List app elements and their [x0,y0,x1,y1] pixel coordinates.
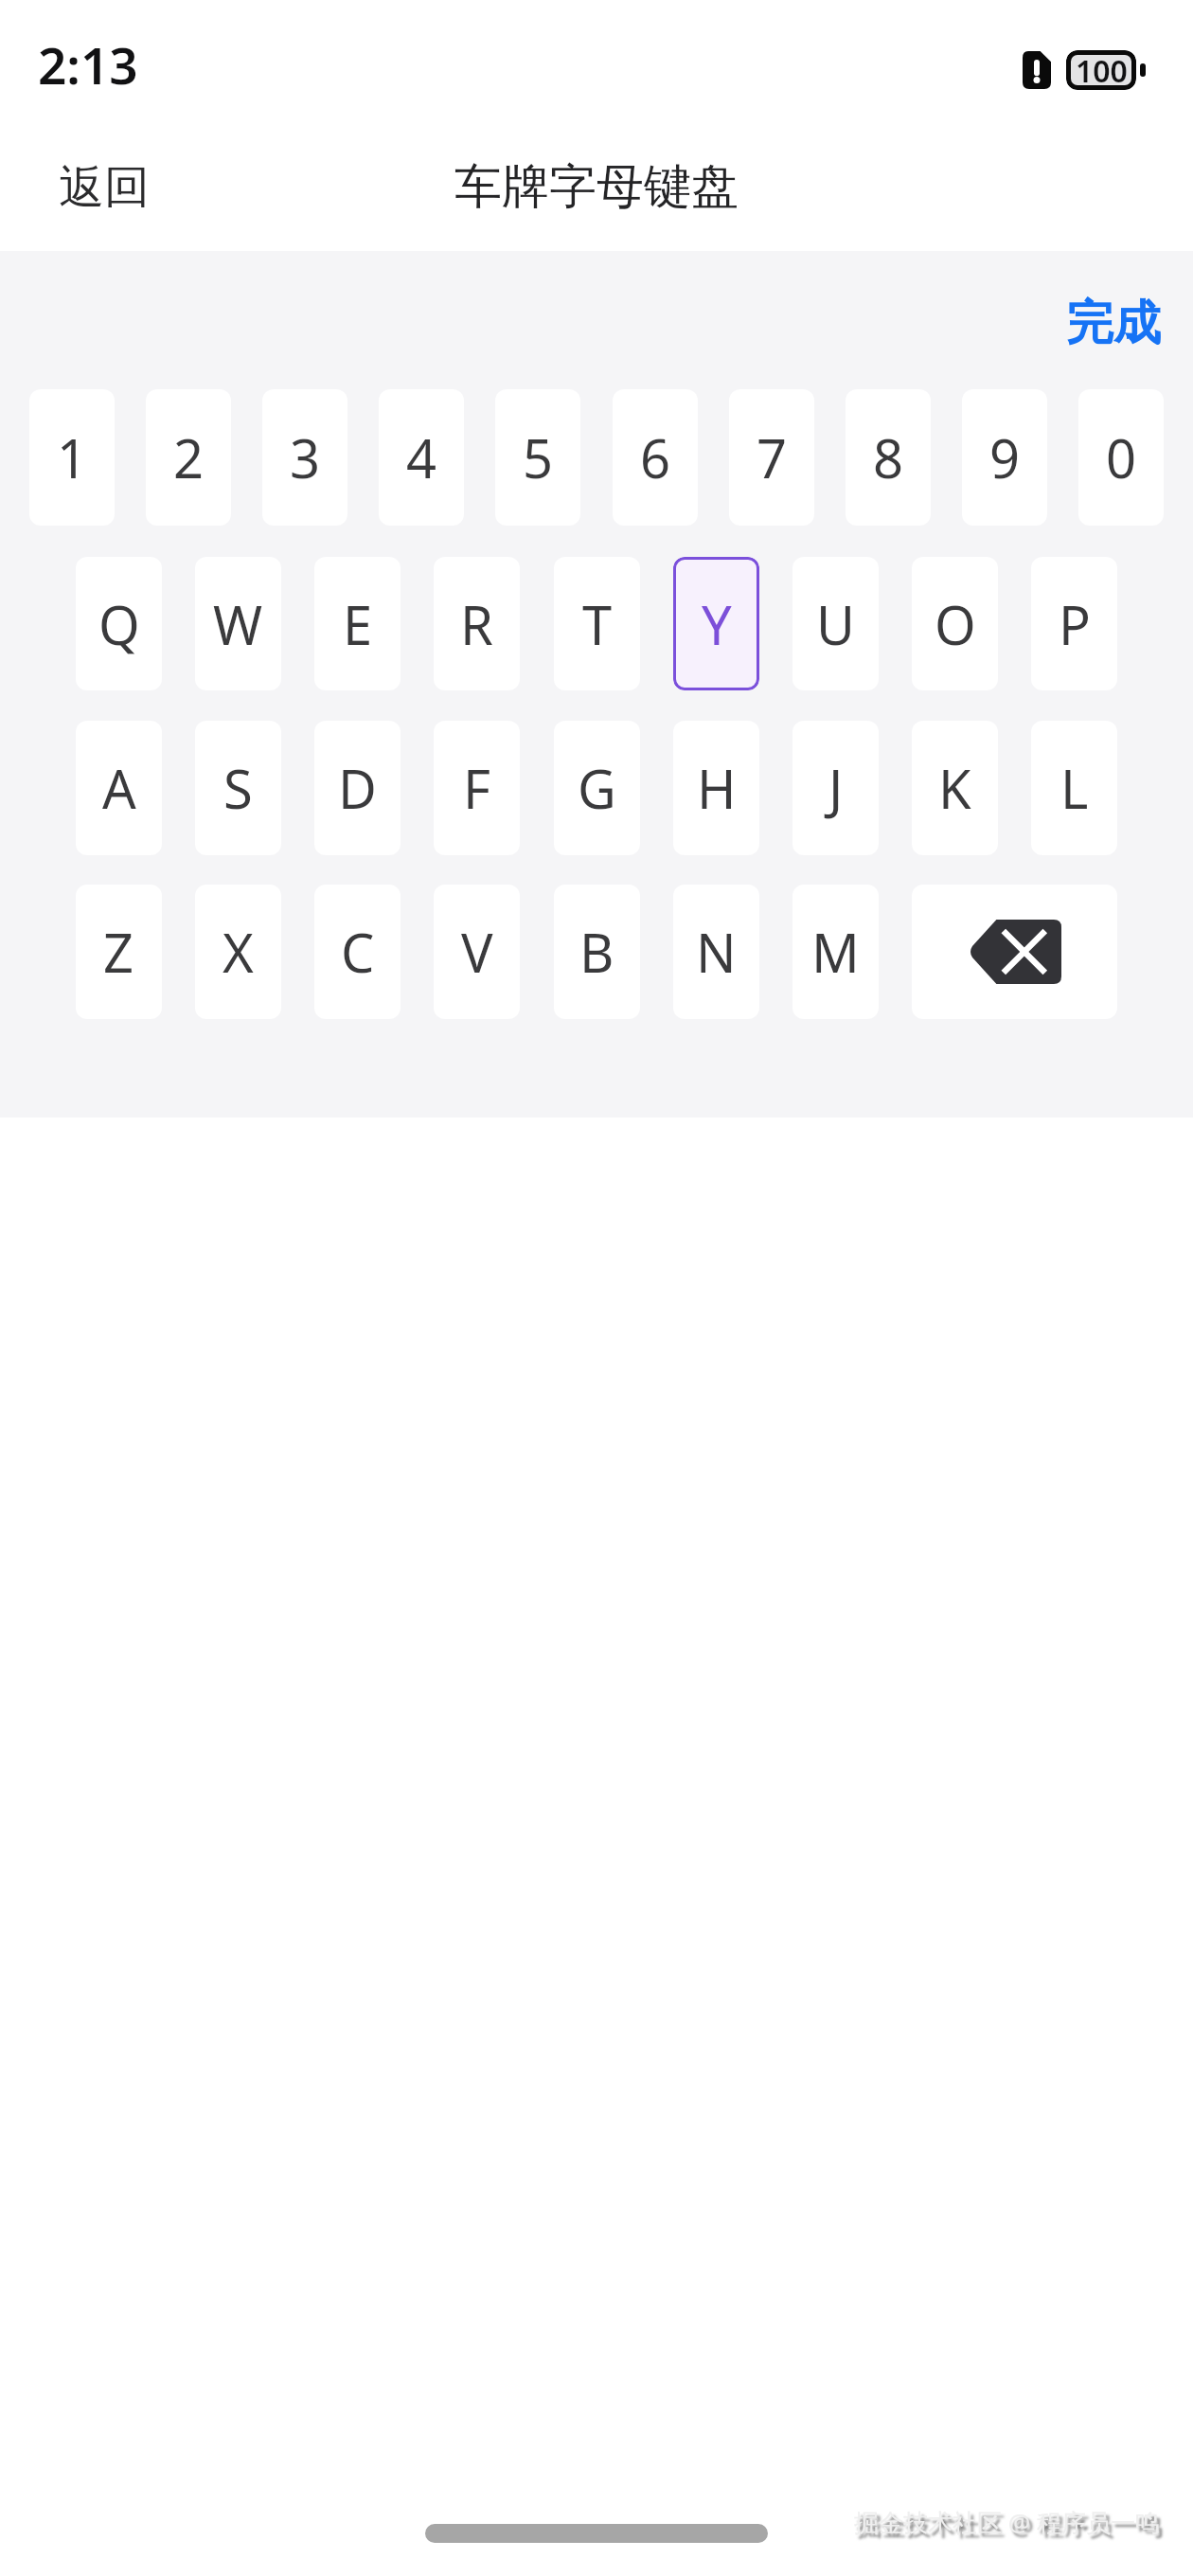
button[interactable]: F [434,721,520,855]
button[interactable]: 7 [729,389,814,526]
staticText: 1 [57,421,88,493]
staticText: H [697,752,737,824]
staticText: 完成 [1066,294,1161,353]
staticText: E [343,588,373,660]
button[interactable]: W [195,557,281,690]
staticText: G [578,752,616,824]
button[interactable]: 4 [379,389,464,526]
button[interactable]: H [673,721,759,855]
staticText: 返回 [59,159,150,216]
button[interactable]: O [912,557,998,690]
button[interactable] [912,885,1117,1019]
staticText: D [338,752,377,824]
staticText: Q [98,588,140,660]
staticText: M [811,916,860,988]
staticText: L [1060,752,1089,824]
button[interactable]: 5 [495,389,580,526]
staticText: B [579,916,614,988]
staticText: 掘金技术社区 @ 程序员一鸣 [854,2505,1160,2539]
staticText: 5 [523,421,554,493]
button[interactable]: J [792,721,879,855]
staticText: P [1059,588,1091,660]
staticText: Y [702,588,732,660]
staticText: R [460,588,493,660]
staticText: J [828,752,844,824]
button[interactable]: U [792,557,879,690]
button[interactable]: Q [76,557,162,690]
button[interactable]: T [554,557,640,690]
staticText: Z [103,916,134,988]
button[interactable]: 返回 [59,159,150,216]
button[interactable]: B [554,885,640,1019]
button[interactable]: Z [76,885,162,1019]
staticText: X [223,916,254,988]
button[interactable]: 完成 [1066,294,1161,353]
button[interactable]: E [314,557,401,690]
staticText: S [223,752,253,824]
staticText: F [463,752,491,824]
staticText: 0 [1106,421,1137,493]
button[interactable]: 1 [29,389,115,526]
button[interactable]: 2 [146,389,231,526]
staticText: U [816,588,855,660]
button[interactable]: S [195,721,281,855]
staticText: 6 [640,421,671,493]
button[interactable]: X [195,885,281,1019]
button[interactable]: L [1031,721,1117,855]
button[interactable]: N [673,885,759,1019]
staticText: N [696,916,737,988]
staticText: C [341,916,375,988]
staticText: 4 [406,421,437,493]
button[interactable]: 3 [262,389,347,526]
staticText: T [582,588,613,660]
staticText: O [935,588,976,660]
staticText: 2 [173,421,205,493]
staticText: 9 [989,421,1021,493]
button[interactable]: 8 [846,389,931,526]
button[interactable]: M [792,885,879,1019]
staticText: 7 [757,421,788,493]
button[interactable]: D [314,721,401,855]
staticText: 100 [1076,50,1128,90]
button[interactable]: 6 [613,389,698,526]
button[interactable]: R [434,557,520,690]
staticText: K [938,752,971,824]
staticText: 8 [873,421,904,493]
staticText: 车牌字母键盘 [454,157,739,217]
button[interactable]: K [912,721,998,855]
button[interactable]: A [76,721,162,855]
button[interactable]: C [314,885,401,1019]
staticText: A [102,752,136,824]
staticText: 3 [290,421,321,493]
button[interactable]: P [1031,557,1117,690]
button[interactable]: 0 [1078,389,1164,526]
button[interactable]: 9 [962,389,1047,526]
button[interactable]: G [554,721,640,855]
staticText: 2:13 [38,30,138,98]
button[interactable]: V [434,885,520,1019]
staticText: W [213,588,263,660]
staticText: V [461,916,493,988]
button[interactable]: Y [673,557,759,690]
